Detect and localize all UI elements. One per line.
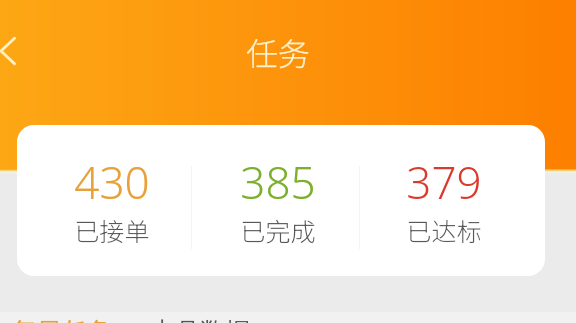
button[interactable]: 379 xyxy=(364,152,524,262)
staticText: 本月数据 xyxy=(150,316,250,323)
staticText: 已接单 xyxy=(74,212,150,248)
staticText: 任务 xyxy=(178,29,378,75)
button[interactable]: 430 xyxy=(32,152,192,262)
button[interactable]: 385 xyxy=(198,152,358,262)
staticText: 已达标 xyxy=(406,212,482,248)
staticText: 每日任务 xyxy=(12,316,112,323)
staticText: 430 xyxy=(74,152,150,212)
staticText: 385 xyxy=(240,152,316,212)
button[interactable]: Back xyxy=(0,27,38,75)
staticText: 379 xyxy=(406,152,482,212)
staticText: 已完成 xyxy=(240,212,316,248)
button[interactable]: 每日任务 xyxy=(0,312,576,323)
